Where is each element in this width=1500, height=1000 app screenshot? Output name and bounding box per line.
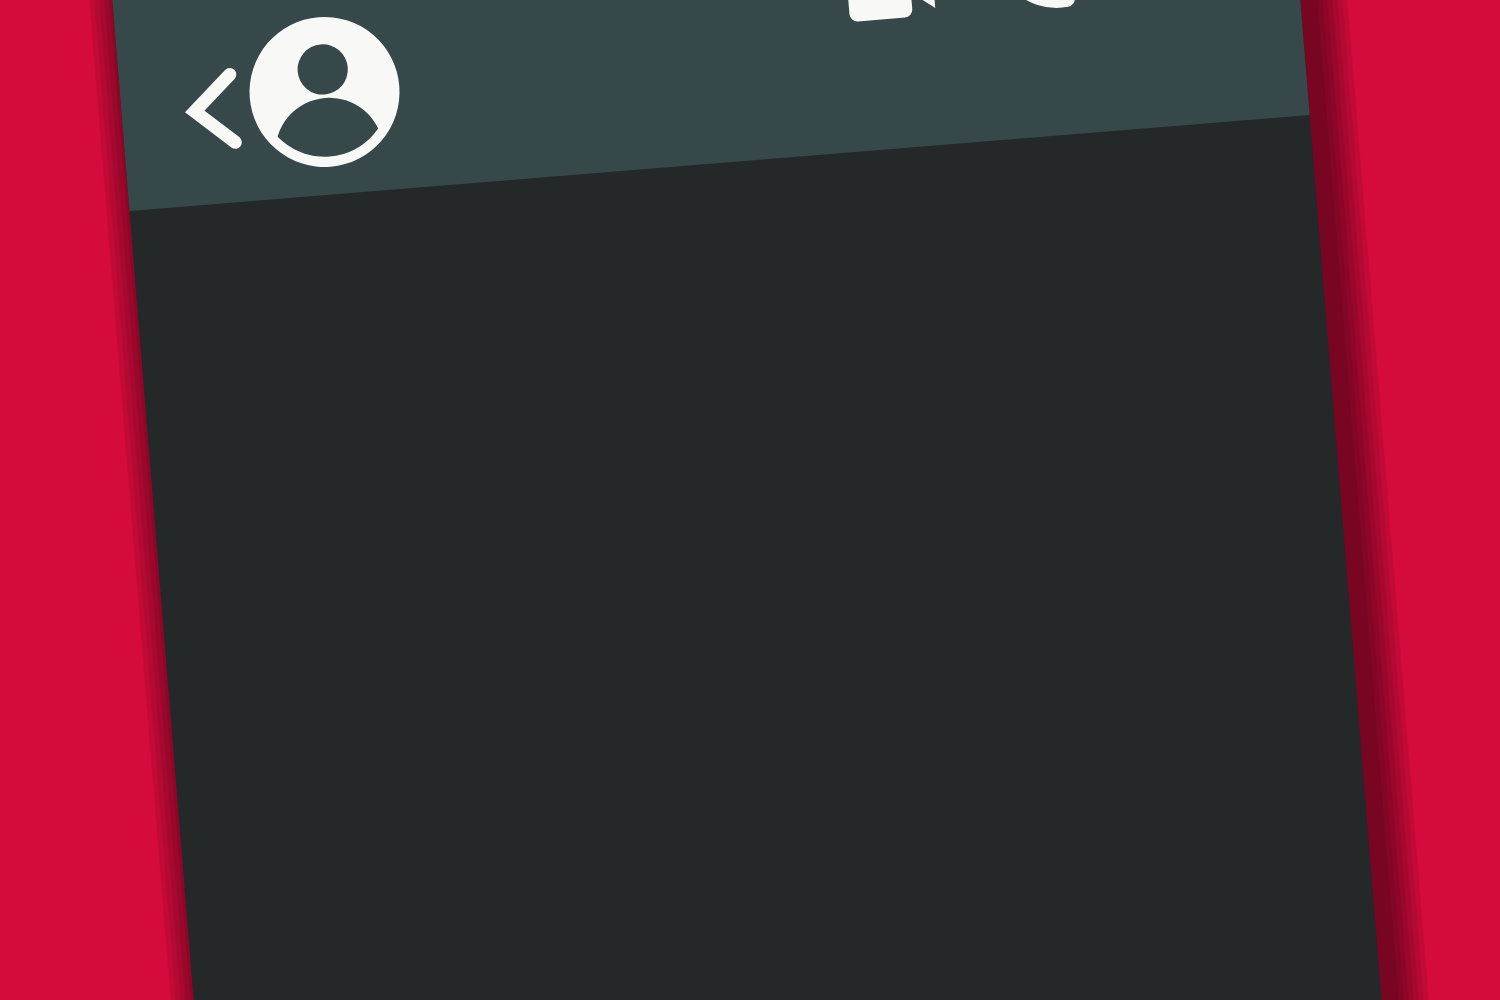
button[interactable]: Back — [208, 14, 284, 122]
button[interactable]: Contact profile — [284, 0, 456, 140]
button[interactable]: Video call — [866, 0, 978, 66]
button[interactable]: Voice call — [1026, 0, 1128, 58]
